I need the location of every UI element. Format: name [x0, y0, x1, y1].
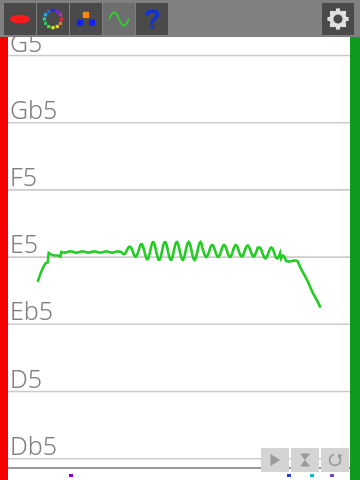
staticText: D5: [10, 361, 43, 395]
staticText: F5: [10, 159, 37, 193]
staticText: G5: [10, 25, 43, 59]
button[interactable]: Settings: [322, 3, 354, 35]
staticText: E5: [10, 226, 39, 260]
button[interactable]: Waveform: [103, 3, 135, 35]
staticText: Db5: [10, 428, 58, 462]
button[interactable]: Record: [4, 3, 36, 35]
staticText: Gb5: [10, 92, 58, 126]
staticText: Eb5: [10, 293, 54, 327]
button[interactable]: Help: [136, 3, 168, 35]
button[interactable]: Reset: [321, 448, 349, 472]
button[interactable]: Harmonics: [70, 3, 102, 35]
button[interactable]: Play: [261, 448, 289, 472]
button[interactable]: Timer: [291, 448, 319, 472]
button[interactable]: Chromatic circle: [37, 3, 69, 35]
